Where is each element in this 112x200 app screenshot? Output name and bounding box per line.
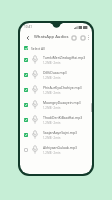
- staticText: 1.2 MB · 2 min: [43, 61, 61, 65]
- button[interactable]: Back: [23, 33, 32, 42]
- button[interactable]: SaajanAayeSajni.mp3: [20, 127, 92, 142]
- staticText: 1.2 MB · 2 min: [43, 106, 61, 110]
- button[interactable]: Share: [69, 33, 78, 42]
- staticText: 1.2 MB · 2 min: [43, 151, 61, 155]
- staticText: 1.2 MB · 2 min: [43, 136, 61, 140]
- staticText: ThodiDeriKiBaatHai.mp3: [43, 115, 83, 120]
- button[interactable]: Delete: [78, 33, 87, 42]
- staticText: 1.2 MB · 2 min: [43, 76, 61, 80]
- button[interactable]: DilKiDuaa.mp3: [20, 67, 92, 82]
- staticText: DilKiDuaa.mp3: [43, 70, 67, 75]
- button[interactable]: AkhiyaanGulaab.mp3: [20, 142, 92, 157]
- staticText: 10:41: [24, 25, 33, 29]
- staticText: PhirAurKyaChahiye.mp3: [43, 85, 82, 90]
- staticText: 1.2 MB · 2 min: [43, 121, 61, 125]
- staticText: SaajanAayeSajni.mp3: [43, 130, 77, 135]
- button[interactable]: PhirAurKyaChahiye.mp3: [20, 82, 92, 97]
- button[interactable]: Select All: [20, 43, 92, 52]
- staticText: AkhiyaanGulaab.mp3: [43, 145, 78, 150]
- staticText: 1.2 MB · 2 min: [43, 91, 61, 95]
- button[interactable]: More options: [87, 33, 89, 42]
- staticText: MaangeyDuaayein.mp3: [43, 100, 81, 105]
- staticText: WhatsApp Audios: [34, 34, 69, 40]
- button[interactable]: TumkiMeriZindagiHai.mp3: [20, 52, 92, 67]
- staticText: Select All: [31, 46, 45, 50]
- staticText: TumkiMeriZindagiHai.mp3: [43, 55, 86, 60]
- button[interactable]: MaangeyDuaayein.mp3: [20, 97, 92, 112]
- button[interactable]: ThodiDeriKiBaatHai.mp3: [20, 112, 92, 127]
